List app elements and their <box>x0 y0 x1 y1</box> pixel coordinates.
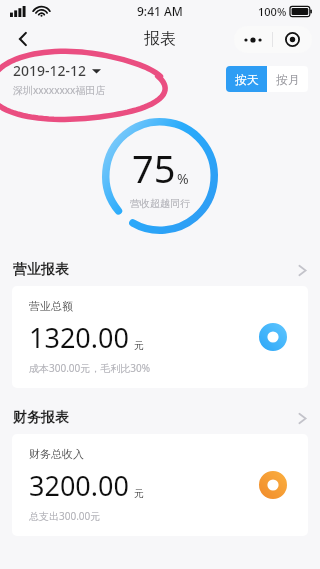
staticText: 营业总额 <box>29 299 73 313</box>
staticText: 100% <box>258 4 287 19</box>
button[interactable]: 营业总额 <box>12 286 308 388</box>
staticText: 财务总收入 <box>29 447 84 461</box>
staticText: 营收超越同行 <box>130 197 190 210</box>
staticText: 1320.00 <box>29 319 129 356</box>
staticText: 75 <box>132 142 176 194</box>
staticText: 总支出300.00元 <box>29 509 101 523</box>
staticText: 报表 <box>144 29 176 49</box>
button[interactable]: 营业报表 <box>0 254 320 286</box>
button[interactable]: 财务报表 <box>0 402 320 434</box>
button[interactable]: 按天 <box>226 66 267 92</box>
button[interactable]: 按月 <box>267 66 308 92</box>
staticText: 财务报表 <box>13 409 69 427</box>
staticText: 成本300.00元，毛利比30% <box>29 361 151 375</box>
staticText: 9:41 AM <box>137 3 183 19</box>
button[interactable]: 2019-12-12 <box>13 61 106 97</box>
button[interactable]: 返回 <box>6 22 40 56</box>
staticText: 按天 <box>235 72 259 87</box>
staticText: 深圳xxxxxxxx福田店 <box>13 83 106 97</box>
staticText: 2019-12-12 <box>13 61 87 80</box>
staticText: 元 <box>134 339 144 352</box>
staticText: % <box>177 169 189 188</box>
staticText: 营业报表 <box>13 261 69 279</box>
button[interactable]: 更多 <box>234 26 312 53</box>
staticText: 按月 <box>276 72 300 87</box>
staticText: 3200.00 <box>29 467 129 504</box>
button[interactable]: 财务总收入 <box>12 434 308 536</box>
staticText: 元 <box>134 487 144 500</box>
